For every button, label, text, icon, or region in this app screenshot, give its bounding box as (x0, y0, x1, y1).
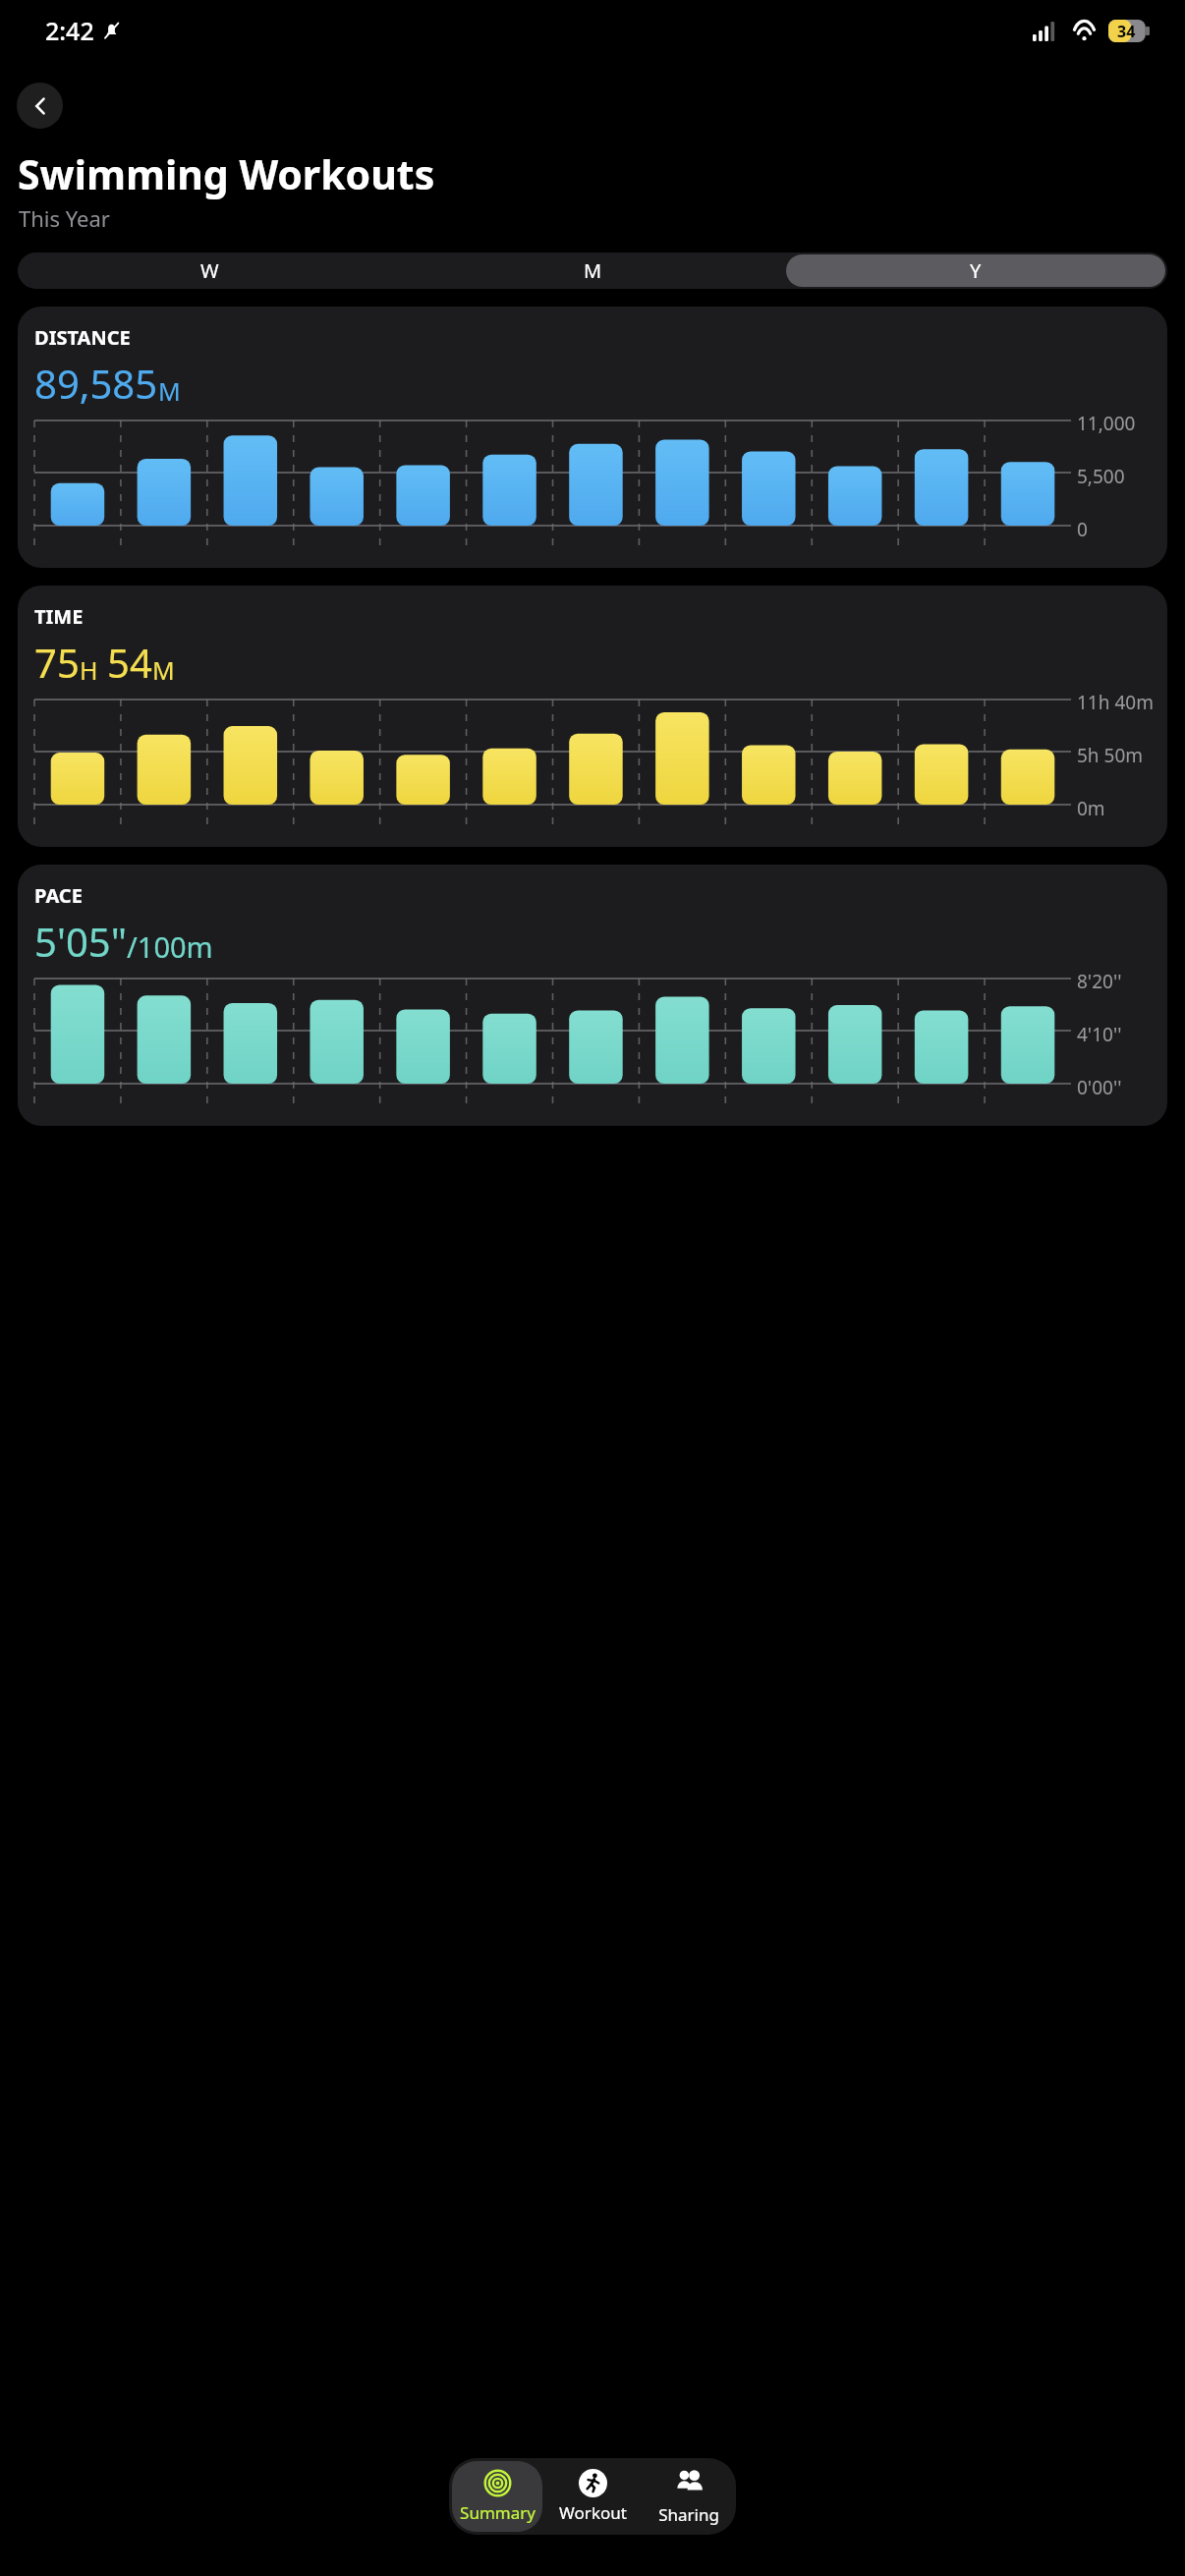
staticText: Swimming Workouts (18, 146, 435, 201)
staticText: 11,000 (1077, 411, 1136, 436)
staticText: 4'10'' (1077, 1022, 1122, 1047)
staticText: 5h 50m (1077, 743, 1144, 768)
button[interactable]: Back (17, 83, 63, 129)
staticText: 0'00'' (1077, 1075, 1122, 1100)
staticText: DISTANCE (34, 324, 131, 351)
staticText: 75 (34, 636, 80, 689)
staticText: H (80, 653, 98, 687)
button[interactable]: TIME (18, 586, 1167, 847)
button[interactable]: W (20, 254, 399, 287)
button[interactable]: Summary (452, 2461, 542, 2532)
staticText: 5'05" (34, 915, 127, 968)
staticText: 8'20'' (1077, 969, 1122, 994)
staticText: 34 (1117, 21, 1136, 42)
staticText: M (152, 653, 175, 687)
staticText: 11h 40m (1077, 690, 1154, 715)
staticText: PACE (34, 882, 83, 909)
button[interactable]: Y (786, 254, 1165, 287)
staticText: 0 (1077, 517, 1088, 542)
staticText: 54 (107, 636, 152, 689)
staticText: /100m (127, 927, 213, 966)
staticText: TIME (34, 603, 84, 630)
staticText: 2:42 (45, 14, 94, 47)
staticText: M (158, 374, 181, 408)
staticText: Workout (559, 2501, 627, 2524)
button[interactable]: Workout (548, 2461, 638, 2532)
staticText: Y (970, 257, 982, 284)
staticText: M (584, 257, 602, 284)
staticText: W (200, 257, 219, 284)
staticText: Sharing (658, 2503, 719, 2526)
staticText: 89,585 (34, 357, 158, 410)
button[interactable]: PACE (18, 865, 1167, 1126)
staticText: 5,500 (1077, 464, 1125, 489)
button[interactable]: Sharing (644, 2461, 733, 2532)
staticText: 0m (1077, 796, 1105, 821)
button[interactable]: DISTANCE (18, 307, 1167, 568)
staticText: Summary (460, 2501, 536, 2524)
button[interactable]: M (403, 254, 782, 287)
staticText: This Year (19, 203, 110, 233)
